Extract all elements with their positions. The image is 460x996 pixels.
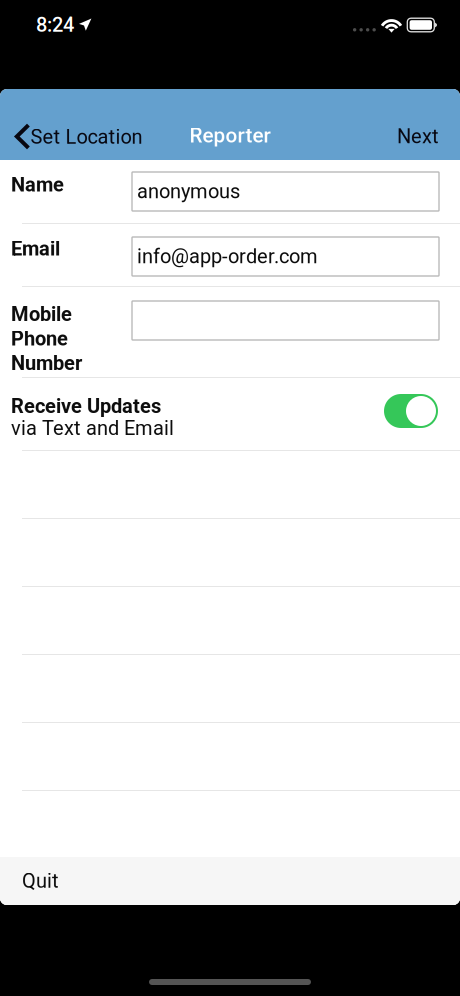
staticText: info@app-order.com: [137, 245, 318, 268]
staticText: Number: [11, 351, 82, 375]
staticText: Set Location: [30, 125, 142, 149]
staticText: Reporter: [189, 123, 270, 148]
button[interactable]: Receive Updates, on: [384, 394, 438, 428]
staticText: Name: [11, 173, 64, 196]
button[interactable]: Email: [132, 237, 439, 276]
staticText: Mobile: [11, 302, 72, 326]
button[interactable]: Next: [377, 89, 460, 160]
button[interactable]: Name: [132, 172, 439, 211]
button[interactable]: Mobile Phone Number: [132, 301, 439, 340]
staticText: Email: [11, 237, 60, 260]
staticText: Quit: [22, 869, 59, 893]
staticText: anonymous: [137, 180, 240, 203]
staticText: 8:24: [36, 13, 74, 37]
staticText: Phone: [11, 327, 68, 350]
staticText: via Text and Email: [11, 416, 174, 440]
button[interactable]: Quit: [0, 857, 460, 905]
staticText: Next: [397, 125, 439, 148]
staticText: Receive Updates: [11, 394, 161, 418]
button[interactable]: Set Location: [0, 93, 156, 156]
